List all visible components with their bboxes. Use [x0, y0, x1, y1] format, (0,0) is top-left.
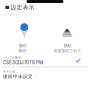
button[interactable]: モデル名 [0, 70, 90, 79]
staticText: 接続中未設定・ [3, 74, 38, 79]
button[interactable]: Back [0, 4, 90, 10]
staticText: 接続 [18, 43, 26, 48]
staticText: CSE3CDJ7078 PM [3, 60, 43, 65]
staticText: 接続 [63, 43, 71, 48]
staticText: 高速接続されて [53, 48, 81, 53]
staticText: 設定表示 [11, 4, 35, 11]
staticText: シリアル番号 [3, 56, 21, 60]
staticText: 接続 [18, 48, 26, 53]
staticText: モデル名 [3, 70, 15, 74]
button[interactable]: シリアル番号 [0, 56, 90, 65]
